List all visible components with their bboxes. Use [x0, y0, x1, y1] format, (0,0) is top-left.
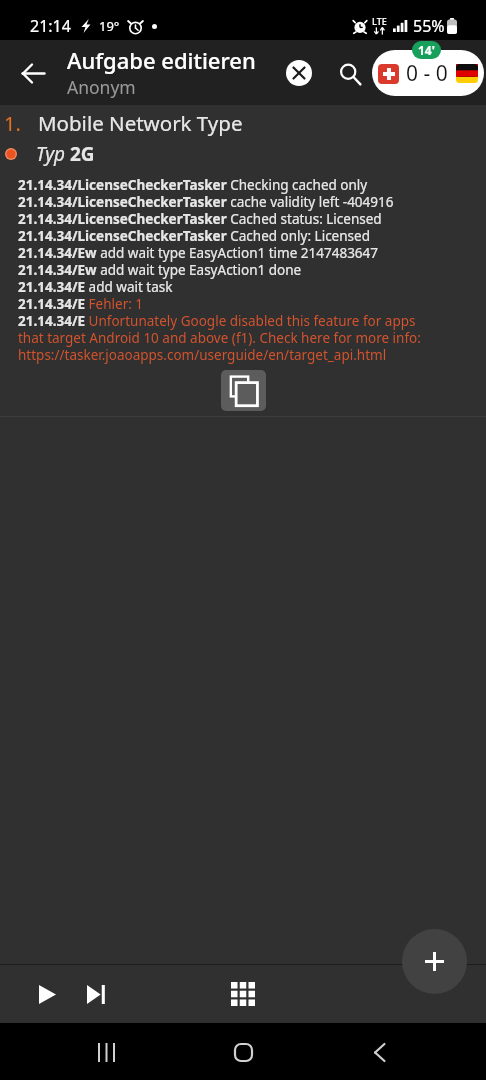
button[interactable]: Home	[219, 1028, 267, 1076]
button[interactable]: Play	[25, 972, 69, 1016]
staticText: 1.	[4, 110, 21, 137]
button[interactable]: Search	[329, 53, 371, 95]
button[interactable]: Action list	[220, 971, 266, 1017]
button[interactable]: Back	[10, 50, 56, 96]
staticText: Mobile Network Type	[38, 109, 243, 137]
staticText: LTE	[372, 15, 387, 27]
staticText: 21:14	[30, 15, 71, 37]
staticText: Typ 2G	[36, 141, 95, 167]
button[interactable]: Back	[355, 1028, 403, 1076]
staticText: 21.14.34/LicenseCheckerTasker Checking c…	[18, 176, 430, 364]
button[interactable]: Close	[281, 55, 317, 91]
button[interactable]: Step forward	[74, 972, 118, 1016]
button[interactable]: Recents	[82, 1028, 130, 1076]
staticText: 14'	[418, 42, 435, 58]
button[interactable]: Add action	[402, 929, 467, 994]
staticText: 19°	[99, 17, 120, 35]
staticText: 0 - 0	[406, 59, 448, 88]
staticText: Anonym	[67, 75, 136, 99]
staticText: Aufgabe editieren	[67, 45, 256, 75]
button[interactable]: Copy log	[221, 370, 266, 411]
button[interactable]: Live score Switzerland Germany	[372, 50, 484, 96]
staticText: 55%	[413, 15, 445, 37]
